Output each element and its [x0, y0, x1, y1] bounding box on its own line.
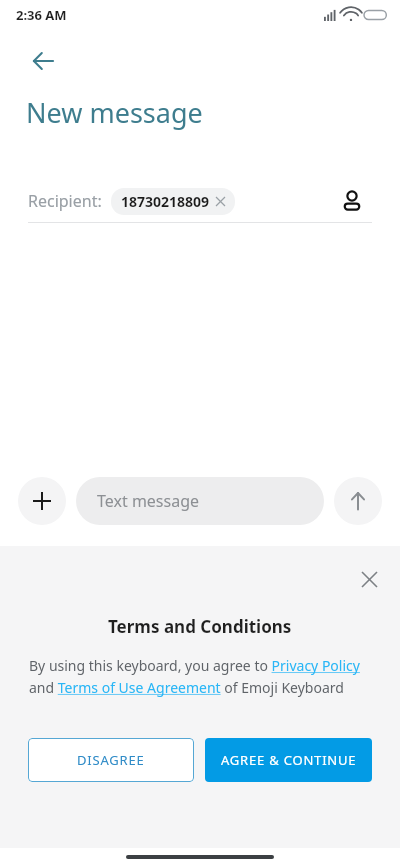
button[interactable]: Contacts	[332, 181, 372, 221]
button[interactable]: Add attachment	[18, 477, 66, 525]
staticText: 18730218809	[121, 192, 210, 211]
staticText: By using this keyboard, you agree to Pri…	[29, 656, 371, 697]
staticText: Text message	[97, 490, 200, 512]
staticText: Terms and Conditions	[108, 615, 292, 638]
button[interactable]: Close	[348, 558, 390, 600]
button[interactable]: AGREE & CONTINUE	[205, 738, 372, 782]
button[interactable]: DISAGREE	[28, 738, 194, 782]
button[interactable]: Text message	[76, 477, 324, 525]
button[interactable]: 18730218809	[111, 188, 235, 215]
button[interactable]: Back	[22, 40, 64, 82]
button[interactable]: Send	[334, 477, 382, 525]
staticText: AGREE & CONTINUE	[221, 751, 357, 769]
staticText: 2:36 AM	[16, 6, 67, 24]
staticText: Recipient:	[28, 190, 102, 212]
staticText: DISAGREE	[77, 751, 145, 769]
staticText: New message	[26, 94, 203, 131]
